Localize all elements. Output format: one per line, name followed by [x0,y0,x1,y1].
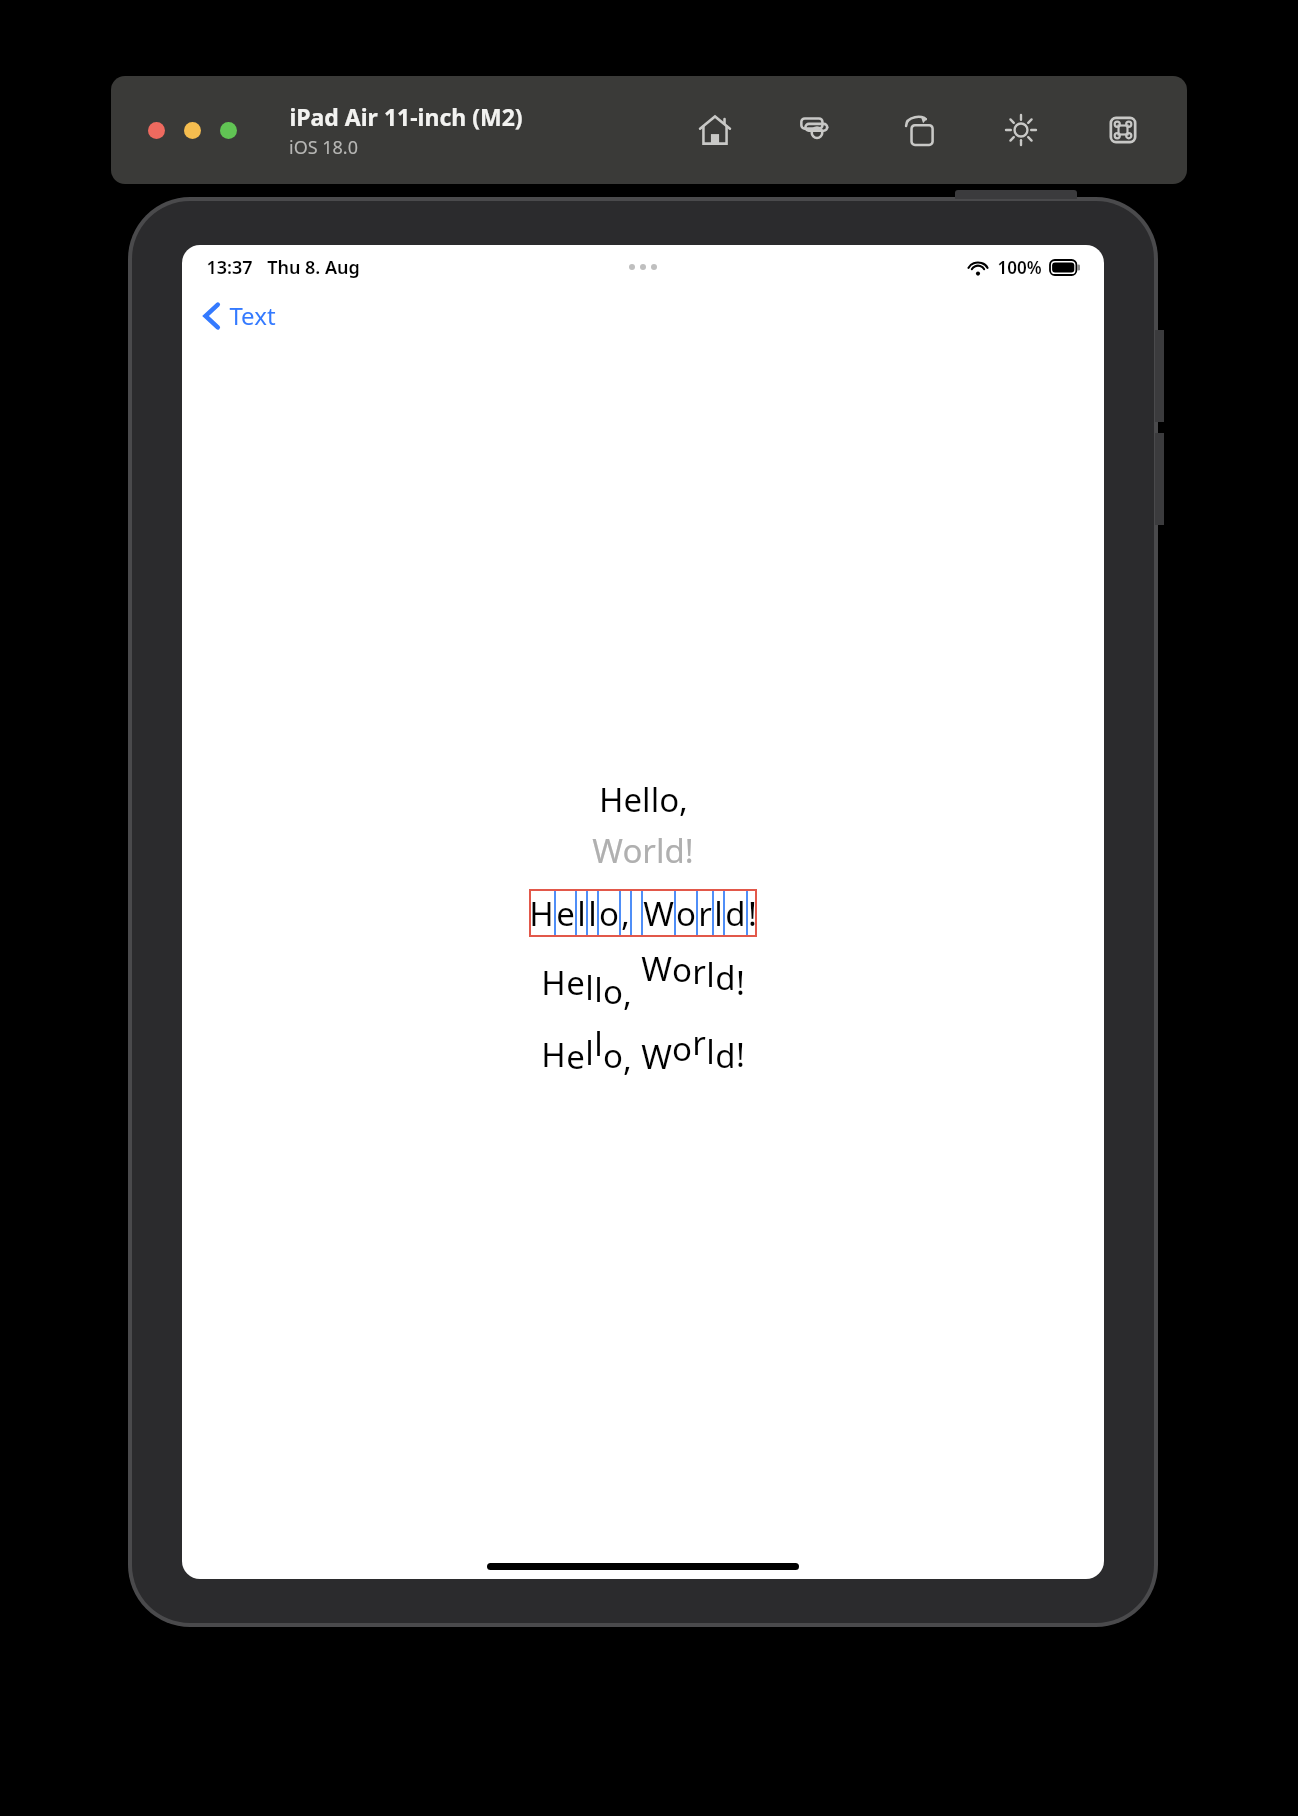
button[interactable]: Rotate [897,108,941,152]
staticText: o [603,1033,623,1078]
staticText: o [672,947,692,992]
staticText: l [585,965,594,1010]
staticText: World! [592,828,694,873]
staticText: H [541,1032,566,1077]
staticText: e [556,891,575,936]
staticText: iPad Air 11-inch (M2) [289,101,523,132]
button[interactable]: Keyboard shortcuts [1101,108,1145,152]
staticText: , [623,1036,632,1081]
staticText: d [715,1033,736,1078]
button[interactable]: Text [196,293,284,338]
staticText: l [594,1021,603,1066]
staticText: Text [229,299,276,332]
staticText: 100% [997,256,1042,279]
button[interactable] [148,122,165,139]
button[interactable]: Screenshot [795,108,839,152]
staticText: ! [736,1032,745,1077]
staticText: o [676,891,696,936]
staticText: , [623,971,632,1016]
button[interactable]: Appearance [999,108,1043,152]
staticText: W [643,891,674,936]
staticText: l [594,967,603,1012]
staticText: e [566,1034,585,1079]
staticText: H [541,960,566,1005]
staticText: ! [748,891,757,936]
staticText: e [566,960,585,1005]
staticText [632,891,641,936]
staticText: , [621,891,630,936]
button[interactable]: Home [693,108,737,152]
staticText: l [706,1029,715,1074]
staticText: r [692,949,706,994]
staticText: l [577,891,586,936]
staticText: l [588,891,597,936]
staticText: 13:37 [206,255,253,280]
staticText: d [725,891,746,936]
button[interactable]: H [529,889,757,937]
staticText: Hello, [599,777,688,822]
staticText: W [641,1034,672,1079]
staticText: d [715,955,736,1000]
button[interactable] [184,122,201,139]
staticText: o [672,1026,692,1071]
staticText: l [714,891,723,936]
staticText: o [599,891,619,936]
staticText: o [603,969,623,1014]
staticText: iOS 18.0 [289,135,358,160]
staticText: W [641,946,672,991]
staticText: l [706,952,715,997]
staticText: l [585,1030,594,1075]
staticText: Thu 8. Aug [267,255,360,280]
staticText: H [529,891,554,936]
button[interactable] [220,122,237,139]
staticText: r [692,1020,706,1065]
staticText: r [698,891,712,936]
staticText: ! [736,960,745,1005]
